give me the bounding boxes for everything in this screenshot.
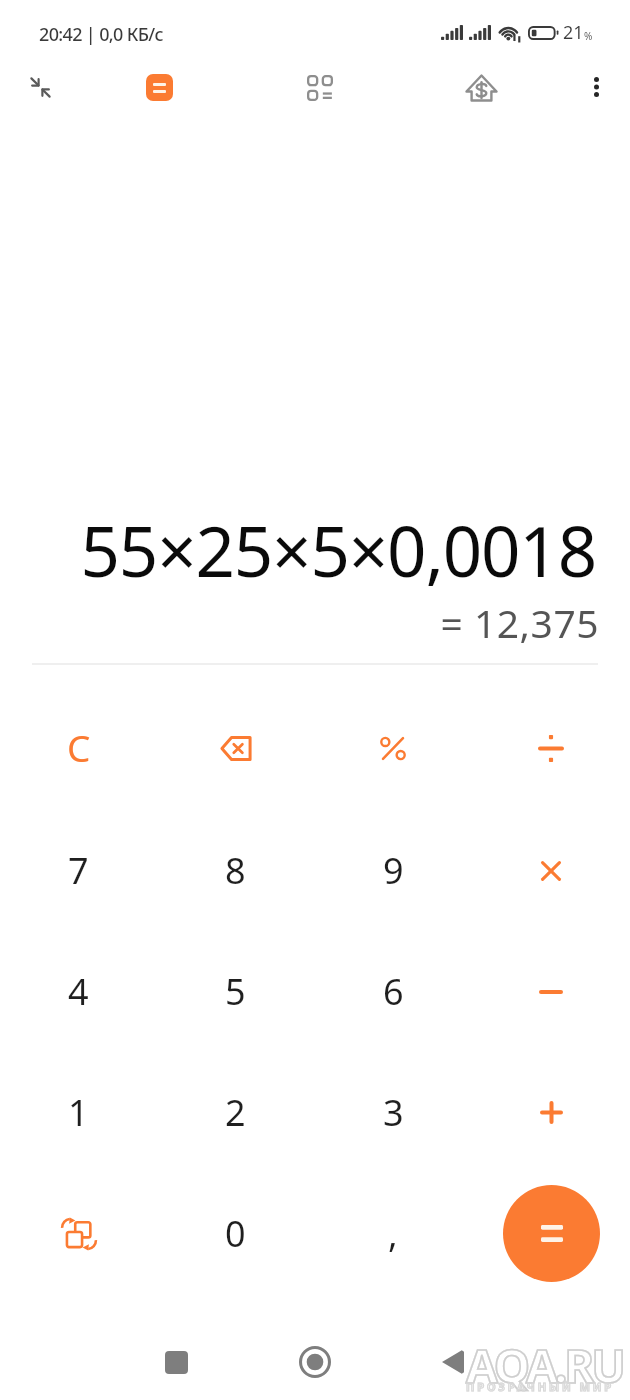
button[interactable]: C: [0, 688, 157, 809]
button[interactable]: More options: [569, 60, 623, 114]
button[interactable]: 8: [157, 810, 314, 931]
button[interactable]: Collapse: [12, 59, 68, 115]
staticText: ПРОЗРАЧНЫЙ МИР: [466, 1379, 615, 1394]
button[interactable]: 7: [0, 810, 157, 931]
staticText: 3: [383, 1088, 404, 1137]
button[interactable]: 1: [0, 1052, 157, 1173]
button[interactable]: 9: [314, 810, 472, 931]
staticText: = 12,375: [0, 596, 599, 649]
button[interactable]: [0, 1173, 157, 1294]
button[interactable]: Unit converter: [292, 60, 348, 116]
staticText: 55×25×5×0,0018: [0, 503, 596, 597]
staticText: 6: [383, 967, 404, 1016]
staticText: 4: [68, 967, 89, 1016]
button[interactable]: [472, 1052, 630, 1173]
button[interactable]: [472, 688, 630, 809]
staticText: ,: [388, 1209, 398, 1258]
button[interactable]: 5: [157, 931, 314, 1052]
staticText: 9: [383, 846, 404, 895]
button[interactable]: 6: [314, 931, 472, 1052]
staticText: 21: [563, 20, 584, 45]
button[interactable]: Back: [423, 1332, 483, 1392]
staticText: 20:42 | 0,0 КБ/с: [39, 22, 163, 47]
button[interactable]: 4: [0, 931, 157, 1052]
staticText: C: [67, 722, 91, 772]
button[interactable]: Recents: [146, 1332, 206, 1392]
button[interactable]: [157, 688, 314, 809]
staticText: 2: [225, 1088, 246, 1137]
button[interactable]: Calculator: [146, 74, 173, 101]
staticText: %: [584, 29, 593, 43]
staticText: AQA.RU: [466, 1334, 623, 1397]
button[interactable]: 2: [157, 1052, 314, 1173]
button[interactable]: Mortgage calculator: [453, 60, 509, 116]
button[interactable]: 0: [157, 1173, 314, 1294]
button[interactable]: [314, 688, 472, 809]
button[interactable]: 3: [314, 1052, 472, 1173]
button[interactable]: Equals: [503, 1185, 600, 1282]
button[interactable]: ,: [314, 1173, 472, 1294]
staticText: 0: [225, 1209, 246, 1258]
staticText: 8: [225, 846, 246, 895]
button[interactable]: Equals: [472, 1173, 630, 1294]
staticText: 7: [68, 846, 89, 895]
staticText: 5: [225, 967, 246, 1016]
staticText: 1: [68, 1088, 89, 1137]
button[interactable]: Home: [285, 1332, 345, 1392]
button[interactable]: [472, 931, 630, 1052]
button[interactable]: [472, 810, 630, 931]
